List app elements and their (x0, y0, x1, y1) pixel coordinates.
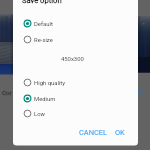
button[interactable]: Low (15, 106, 136, 121)
staticText: OK (115, 128, 125, 137)
button[interactable]: High quality (15, 75, 136, 90)
staticText: Cor (2, 89, 12, 96)
staticText: High quality (34, 80, 66, 87)
staticText: Re-size (34, 37, 53, 44)
staticText: Save option (22, 0, 62, 5)
staticText: 450x300 (61, 56, 84, 63)
button[interactable]: Re-size (15, 32, 136, 47)
button[interactable]: CANCEL (73, 126, 113, 139)
staticText: Medium (34, 96, 56, 103)
button[interactable]: OK (112, 126, 128, 139)
staticText: HER (135, 88, 146, 95)
button[interactable]: Default (15, 16, 136, 31)
staticText: Default (34, 21, 53, 28)
button[interactable]: Medium (15, 91, 136, 106)
staticText: Low (34, 111, 45, 118)
staticText: CANCEL (79, 128, 107, 137)
